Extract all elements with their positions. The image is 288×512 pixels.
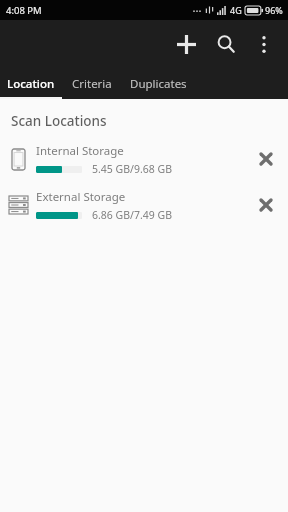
button[interactable]: Search — [206, 24, 246, 64]
button[interactable]: More options — [246, 26, 282, 62]
staticText: Duplicates — [130, 76, 187, 92]
staticText: External Storage — [36, 189, 126, 205]
staticText: 5.45 GB/9.68 GB — [92, 162, 172, 176]
staticText: Scan Locations — [11, 112, 107, 130]
staticText: 4:08 PM — [6, 4, 42, 17]
staticText: Internal Storage — [36, 143, 124, 159]
staticText: 96% — [265, 4, 283, 16]
staticText: 4G — [230, 4, 242, 16]
staticText: Criteria — [72, 76, 112, 92]
button[interactable]: Remove External Storage — [246, 185, 286, 225]
button[interactable]: Duplicates — [122, 68, 194, 99]
staticText: Location — [7, 76, 55, 92]
staticText: 6.86 GB/7.49 GB — [92, 208, 172, 222]
button[interactable]: Criteria — [62, 68, 122, 99]
button[interactable]: Location — [0, 68, 62, 99]
button[interactable]: Add location — [166, 24, 206, 64]
button[interactable]: External Storage — [0, 185, 288, 225]
button[interactable]: Internal Storage — [0, 139, 288, 179]
button[interactable]: Remove Internal Storage — [246, 139, 286, 179]
